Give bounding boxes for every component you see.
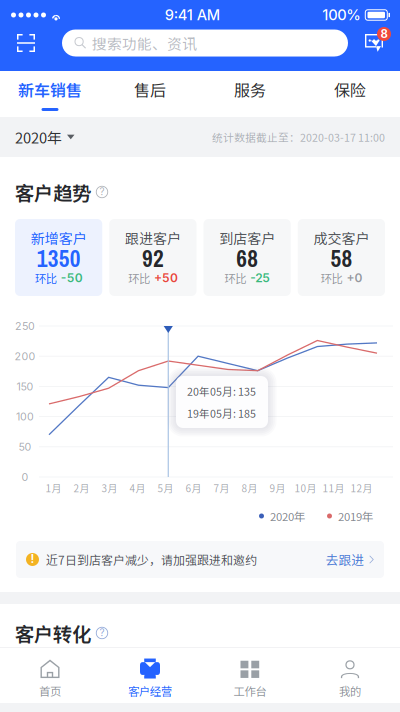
staticText: 服务 bbox=[234, 78, 266, 101]
staticText: 2020年 bbox=[270, 508, 305, 524]
button[interactable]: 新车销售 bbox=[0, 71, 100, 117]
staticText: 20年05月: 135 bbox=[187, 383, 256, 399]
staticText: 保险 bbox=[334, 78, 366, 101]
button[interactable]: 搜索功能、资讯 bbox=[62, 29, 348, 56]
button[interactable]: 新增客户 bbox=[15, 219, 102, 296]
staticText: 首页 bbox=[39, 682, 61, 699]
staticText: ? bbox=[99, 185, 104, 197]
staticText: 我的 bbox=[339, 682, 361, 699]
staticText: 7月 bbox=[213, 481, 229, 495]
staticText: 10月 bbox=[294, 481, 316, 495]
staticText: 4月 bbox=[129, 481, 145, 495]
staticText: -50 bbox=[61, 271, 83, 285]
staticText: 1350 bbox=[37, 243, 81, 274]
staticText: 环比 bbox=[224, 270, 246, 286]
staticText: 11月 bbox=[322, 481, 344, 495]
staticText: 12月 bbox=[350, 481, 372, 495]
button[interactable]: 跟进客户 bbox=[109, 219, 196, 296]
button[interactable]: 首页 bbox=[0, 647, 100, 703]
staticText: 0 bbox=[21, 471, 28, 483]
staticText: 客户趋势 bbox=[15, 178, 91, 206]
staticText: 2019年 bbox=[338, 508, 373, 524]
staticText: 3月 bbox=[101, 481, 117, 495]
staticText: 9:41 AM bbox=[165, 6, 220, 24]
button[interactable]: 扫一扫 bbox=[4, 28, 48, 58]
staticText: 客户转化 bbox=[15, 619, 91, 647]
button[interactable]: 我的 bbox=[300, 647, 400, 703]
staticText: ! bbox=[30, 552, 34, 566]
staticText: 2020年 bbox=[15, 126, 62, 148]
staticText: 9月 bbox=[269, 481, 285, 495]
staticText: 成交客户 bbox=[313, 228, 369, 248]
staticText: 19年05月: 185 bbox=[187, 405, 256, 421]
staticText: 统计数据截止至：2020-03-17 11:00 bbox=[212, 129, 385, 145]
staticText: 100% bbox=[322, 6, 361, 24]
button[interactable]: 2020年 bbox=[15, 116, 74, 158]
staticText: 100 bbox=[16, 410, 34, 423]
staticText: 搜索功能、资讯 bbox=[92, 32, 197, 54]
staticText: 环比 bbox=[35, 270, 57, 286]
staticText: -25 bbox=[250, 271, 270, 285]
staticText: 68 bbox=[236, 243, 258, 274]
staticText: 150 bbox=[16, 380, 33, 393]
staticText: 2月 bbox=[73, 481, 89, 495]
staticText: 环比 bbox=[128, 270, 150, 286]
staticText: 8 bbox=[380, 27, 387, 41]
staticText: 1月 bbox=[45, 481, 61, 495]
staticText: 200 bbox=[14, 350, 35, 363]
button[interactable]: ! bbox=[16, 541, 384, 578]
staticText: 5月 bbox=[157, 481, 173, 495]
staticText: 近7日到店客户减少，请加强跟进和邀约 bbox=[46, 551, 257, 568]
staticText: 新增客户 bbox=[31, 228, 87, 248]
staticText: 8月 bbox=[241, 481, 257, 495]
staticText: 到店客户 bbox=[219, 228, 275, 248]
staticText: 跟进客户 bbox=[125, 228, 181, 248]
staticText: 工作台 bbox=[233, 682, 266, 699]
staticText: 售后 bbox=[134, 78, 166, 101]
button[interactable]: 售后 bbox=[100, 71, 200, 117]
button[interactable]: 保险 bbox=[300, 71, 400, 117]
staticText: 250 bbox=[15, 320, 35, 332]
button[interactable]: 服务 bbox=[200, 71, 300, 117]
staticText: 6月 bbox=[185, 481, 201, 495]
staticText: +50 bbox=[154, 271, 178, 285]
staticText: 50 bbox=[18, 440, 31, 453]
button[interactable]: 成交客户 bbox=[298, 219, 385, 296]
staticText: 客户经营 bbox=[128, 682, 172, 699]
button[interactable]: 客户经营 bbox=[100, 647, 200, 703]
staticText: 新车销售 bbox=[18, 78, 82, 101]
button[interactable]: 工作台 bbox=[200, 647, 300, 703]
staticText: 环比 bbox=[320, 270, 342, 286]
staticText: 去跟进 bbox=[325, 550, 364, 569]
staticText: 92 bbox=[142, 243, 164, 274]
button[interactable]: 消息 bbox=[359, 28, 389, 58]
staticText: +0 bbox=[346, 271, 362, 285]
button[interactable]: 到店客户 bbox=[203, 219, 291, 296]
staticText: ? bbox=[99, 626, 104, 638]
staticText: 58 bbox=[330, 243, 352, 274]
